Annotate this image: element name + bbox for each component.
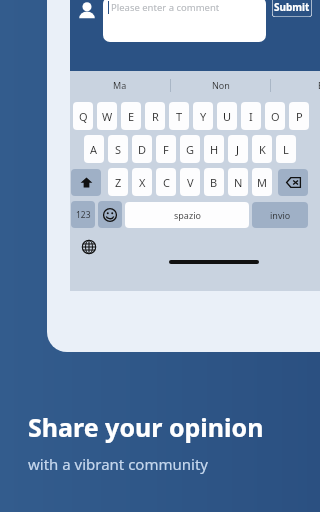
button[interactable]: L xyxy=(276,135,296,163)
button[interactable]: E xyxy=(271,71,320,99)
button[interactable] xyxy=(71,169,101,196)
button[interactable]: E xyxy=(121,102,141,130)
button[interactable] xyxy=(278,169,308,196)
staticText: Q xyxy=(79,109,88,124)
staticText: F xyxy=(163,142,169,157)
staticText: O xyxy=(271,109,280,124)
staticText: Non xyxy=(212,79,230,91)
button[interactable]: Non xyxy=(171,71,270,99)
button[interactable]: T xyxy=(169,102,189,130)
button[interactable]: W xyxy=(97,102,117,130)
staticText: H xyxy=(210,142,219,157)
button[interactable]: A xyxy=(84,135,104,163)
staticText: L xyxy=(283,142,289,157)
button[interactable]: O xyxy=(265,102,285,130)
button[interactable]: Submit xyxy=(272,0,312,17)
button[interactable]: R xyxy=(145,102,165,130)
button[interactable]: Y xyxy=(193,102,213,130)
staticText: Y xyxy=(200,109,207,124)
button[interactable]: N xyxy=(228,168,248,196)
button[interactable]: C xyxy=(156,168,176,196)
staticText: J xyxy=(236,142,240,157)
staticText: with a vibrant community xyxy=(28,454,208,474)
button[interactable]: I xyxy=(241,102,261,130)
staticText: M xyxy=(257,175,267,190)
staticText: 123 xyxy=(76,209,91,221)
staticText: E xyxy=(128,109,135,124)
button[interactable]: J xyxy=(228,135,248,163)
staticText: Z xyxy=(115,175,122,190)
staticText: A xyxy=(90,142,98,157)
staticText: W xyxy=(102,109,113,124)
staticText: Ma xyxy=(113,79,127,91)
staticText: C xyxy=(163,175,170,190)
button[interactable]: G xyxy=(180,135,200,163)
button[interactable]: B xyxy=(204,168,224,196)
button[interactable]: S xyxy=(108,135,128,163)
staticText: S xyxy=(115,142,122,157)
button[interactable]: X xyxy=(132,168,152,196)
button[interactable]: Change keyboard xyxy=(81,239,97,255)
button[interactable]: 123 xyxy=(71,201,95,228)
button[interactable]: K xyxy=(252,135,272,163)
staticText: V xyxy=(187,175,194,190)
staticText: Share your opinion xyxy=(28,410,264,444)
button[interactable]: Please enter a comment xyxy=(103,0,266,42)
button[interactable]: Q xyxy=(73,102,93,130)
button[interactable]: U xyxy=(217,102,237,130)
staticText: invio xyxy=(270,209,291,221)
staticText: E xyxy=(318,79,320,91)
staticText: G xyxy=(186,142,195,157)
button[interactable]: V xyxy=(180,168,200,196)
button[interactable]: invio xyxy=(252,202,308,228)
button[interactable]: H xyxy=(204,135,224,163)
staticText: D xyxy=(138,142,147,157)
staticText: B xyxy=(210,175,218,190)
staticText: K xyxy=(259,142,266,157)
button[interactable]: D xyxy=(132,135,152,163)
staticText: Submit xyxy=(274,0,310,14)
button[interactable]: spazio xyxy=(125,202,249,228)
button[interactable]: Z xyxy=(108,168,128,196)
staticText: spazio xyxy=(174,209,201,221)
staticText: Please enter a comment xyxy=(111,1,220,14)
staticText: R xyxy=(152,109,159,124)
button[interactable]: Profile xyxy=(74,0,100,23)
staticText: X xyxy=(139,175,146,190)
staticText: N xyxy=(234,175,243,190)
staticText: I xyxy=(249,109,253,124)
button[interactable] xyxy=(98,201,122,228)
staticText: U xyxy=(223,109,232,124)
staticText: P xyxy=(296,109,303,124)
button[interactable]: P xyxy=(289,102,309,130)
button[interactable]: Ma xyxy=(70,71,170,99)
staticText: T xyxy=(176,109,183,124)
button[interactable]: M xyxy=(252,168,272,196)
button[interactable]: F xyxy=(156,135,176,163)
